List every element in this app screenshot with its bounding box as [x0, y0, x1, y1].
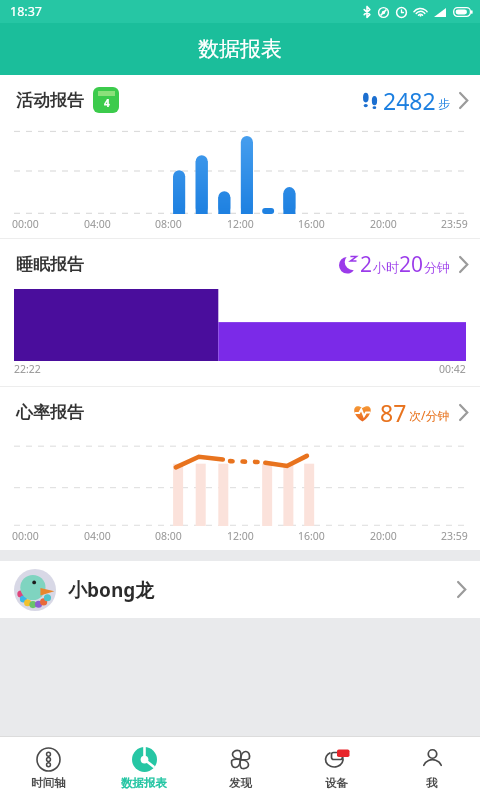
staticText: 23:59	[441, 529, 468, 543]
staticText: 20:00	[370, 217, 397, 231]
button[interactable]: 设备	[288, 737, 384, 800]
staticText: 87	[380, 397, 407, 428]
staticText: 次/分钟	[409, 407, 450, 423]
button[interactable]: 睡眠报告 2小时20分钟	[0, 239, 480, 289]
staticText: 活动报告	[16, 90, 84, 111]
button[interactable]: 小bong龙	[0, 561, 480, 618]
staticText: 00:42	[439, 362, 466, 376]
staticText: 步	[438, 96, 450, 111]
staticText: 16:00	[298, 217, 325, 231]
button[interactable]: 活动报告 2482 步	[0, 75, 480, 125]
button[interactable]: 时间轴	[0, 737, 96, 800]
staticText: 08:00	[155, 529, 182, 543]
staticText: 12:00	[227, 529, 254, 543]
staticText: 00:00	[12, 217, 39, 231]
staticText: 22:22	[14, 362, 41, 376]
button[interactable]: 数据报表	[96, 737, 192, 800]
staticText: 2482	[383, 85, 436, 116]
staticText: 08:00	[155, 217, 182, 231]
button[interactable]: 心率报告 87 次每分钟	[0, 387, 480, 437]
staticText: 04:00	[84, 217, 111, 231]
staticText: 设备	[325, 776, 348, 790]
staticText: 23:59	[441, 217, 468, 231]
staticText: 18:37	[10, 3, 42, 20]
staticText: 我	[426, 776, 438, 790]
staticText: 16:00	[298, 529, 325, 543]
staticText: 20	[399, 250, 424, 279]
staticText: 分钟	[424, 259, 450, 275]
staticText: 发现	[229, 776, 252, 790]
staticText: 小bong龙	[68, 577, 155, 603]
staticText: 心率报告	[16, 402, 84, 423]
staticText: 数据报表	[198, 36, 282, 62]
staticText: 04:00	[84, 529, 111, 543]
staticText: 20:00	[370, 529, 397, 543]
staticText: 数据报表	[121, 776, 167, 790]
staticText: 4	[104, 96, 110, 110]
button[interactable]: 我	[384, 737, 480, 800]
staticText: 00:00	[12, 529, 39, 543]
staticText: 小时	[373, 259, 399, 275]
staticText: 睡眠报告	[16, 254, 84, 275]
staticText: 12:00	[227, 217, 254, 231]
staticText: 时间轴	[31, 776, 66, 790]
staticText: 2	[360, 250, 373, 279]
button[interactable]: 发现	[192, 737, 288, 800]
